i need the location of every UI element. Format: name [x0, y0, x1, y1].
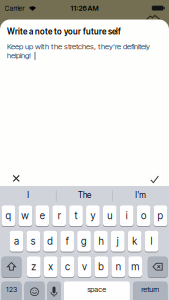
button[interactable]: p — [154, 205, 167, 226]
staticText: 123 — [6, 285, 17, 294]
staticText: x — [48, 261, 53, 273]
staticText: w — [21, 210, 29, 222]
button[interactable]: x — [44, 256, 57, 277]
staticText: space — [87, 285, 106, 294]
staticText: f — [66, 235, 69, 247]
button[interactable]: w — [18, 205, 32, 226]
button[interactable]: k — [128, 231, 141, 252]
staticText: I — [27, 190, 29, 200]
staticText: 11:26 AM — [70, 4, 98, 12]
staticText: s — [31, 235, 36, 247]
button[interactable]: a — [10, 231, 23, 252]
button[interactable]: z — [27, 256, 41, 277]
button[interactable]: f — [60, 231, 74, 252]
staticText: z — [31, 261, 36, 273]
staticText: k — [132, 235, 137, 247]
button[interactable]: s — [26, 231, 40, 252]
button[interactable]: o — [137, 205, 150, 226]
staticText: r — [58, 210, 61, 222]
button[interactable]: v — [78, 256, 91, 277]
button[interactable]: return — [133, 281, 167, 300]
button[interactable]: u — [103, 205, 117, 226]
button[interactable]: r — [52, 205, 66, 226]
button[interactable]: Done — [142, 168, 166, 190]
button[interactable]: Shift — [2, 256, 21, 277]
staticText: b — [98, 261, 104, 273]
button[interactable]: Dictate — [47, 281, 60, 300]
staticText: The — [78, 190, 91, 200]
staticText: e — [40, 210, 45, 222]
button[interactable]: g — [77, 231, 91, 252]
button[interactable]: n — [111, 256, 125, 277]
button[interactable]: i — [120, 205, 133, 226]
staticText: l — [151, 235, 153, 247]
button[interactable]: Cancel — [4, 167, 28, 189]
button[interactable]: h — [94, 231, 108, 252]
staticText: g — [81, 235, 87, 247]
staticText: o — [141, 210, 146, 222]
button[interactable]: I — [1, 185, 55, 204]
button[interactable]: space — [64, 281, 130, 300]
button[interactable]: I'm — [114, 185, 168, 204]
button[interactable]: Numbers — [2, 281, 21, 300]
button[interactable]: Delete — [148, 256, 168, 277]
staticText: t — [74, 210, 77, 222]
button[interactable]: Emoji — [25, 281, 44, 300]
staticText: Keep up with the stretches, they're defi… — [7, 42, 150, 51]
staticText: m — [131, 261, 139, 273]
button[interactable]: m — [128, 256, 142, 277]
staticText: I'm — [135, 190, 146, 200]
button[interactable]: The — [57, 185, 111, 204]
staticText: h — [98, 235, 103, 247]
staticText: i — [126, 210, 128, 222]
staticText: p — [157, 210, 163, 222]
staticText: Carrier — [4, 4, 24, 12]
staticText: Write a note to your future self — [7, 27, 121, 36]
staticText: v — [82, 261, 87, 273]
staticText: q — [5, 210, 11, 222]
button[interactable]: j — [111, 231, 125, 252]
button[interactable]: c — [61, 256, 74, 277]
staticText: return — [141, 285, 159, 294]
staticText: u — [107, 210, 112, 222]
button[interactable]: b — [94, 256, 108, 277]
staticText: j — [117, 235, 119, 247]
button[interactable]: t — [69, 205, 83, 226]
staticText: c — [65, 261, 70, 273]
button[interactable]: l — [145, 231, 158, 252]
button[interactable]: d — [43, 231, 57, 252]
staticText: y — [90, 210, 95, 222]
staticText: helping! — [7, 51, 31, 60]
button[interactable]: e — [35, 205, 49, 226]
button[interactable]: q — [2, 205, 15, 226]
staticText: d — [47, 235, 53, 247]
button[interactable]: y — [86, 205, 100, 226]
staticText: n — [116, 261, 121, 273]
staticText: a — [14, 235, 19, 247]
